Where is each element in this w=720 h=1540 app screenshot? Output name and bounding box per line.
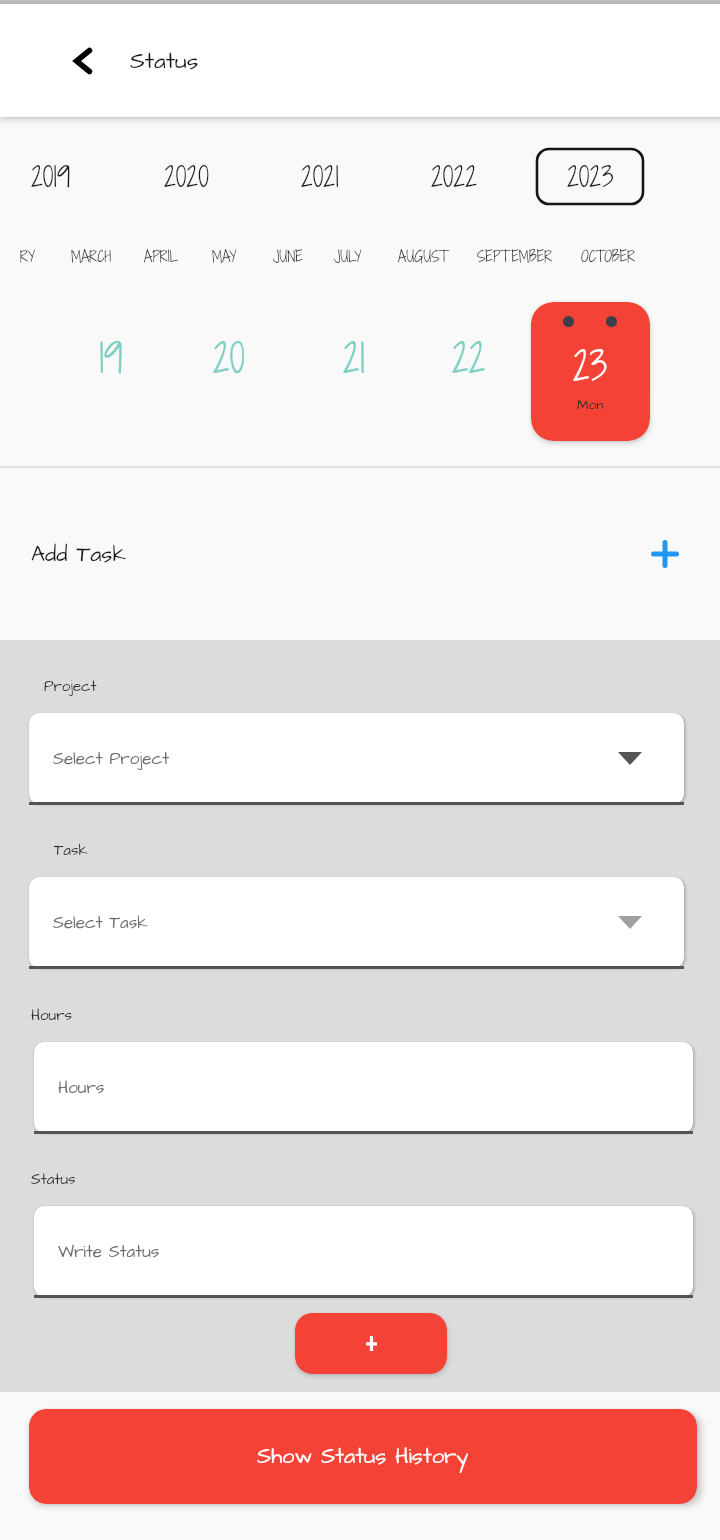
staticText: 2023 — [567, 157, 614, 196]
staticText: MAY — [212, 246, 237, 266]
button[interactable]: MAY — [169, 234, 279, 278]
button[interactable]: 19 — [66, 324, 156, 392]
button[interactable]: 2022 — [401, 149, 507, 204]
button[interactable]: 2023 — [537, 149, 643, 204]
button[interactable]: APRIL — [106, 234, 216, 278]
button[interactable]: Write Status — [34, 1206, 693, 1297]
staticText: Show Status History — [257, 1441, 469, 1472]
button[interactable]: 2021 — [267, 149, 373, 204]
staticText: 21 — [343, 331, 365, 386]
button[interactable]: 20 — [184, 324, 274, 392]
button[interactable]: AUGUST — [368, 234, 478, 278]
staticText: Status — [31, 1169, 76, 1190]
button[interactable]: 22 — [424, 324, 514, 392]
staticText: Write Status — [58, 1240, 160, 1264]
staticText: Status — [130, 45, 199, 77]
staticText: 19 — [99, 331, 123, 386]
staticText: Select Project — [53, 747, 170, 771]
staticText: Hours — [58, 1076, 105, 1100]
staticText: OCTOBER — [581, 246, 636, 266]
button[interactable]: MARCH — [36, 234, 146, 278]
staticText: SEPTEMBER — [477, 246, 552, 266]
staticText: RY — [20, 246, 36, 266]
staticText: Hours — [31, 1005, 72, 1026]
button[interactable]: 2020 — [133, 149, 239, 204]
staticText: 2022 — [431, 157, 477, 196]
staticText: 2021 — [301, 157, 339, 196]
button[interactable]: 2019 — [0, 149, 104, 204]
staticText: 20 — [213, 331, 245, 386]
staticText: APRIL — [144, 246, 179, 266]
staticText: JULY — [334, 246, 362, 266]
staticText: Select Task — [53, 911, 148, 935]
button[interactable]: RY — [0, 234, 83, 278]
button[interactable]: Show Status History — [29, 1409, 697, 1504]
staticText: Task — [54, 840, 88, 861]
staticText: 23 — [573, 339, 608, 394]
button[interactable]: Select Task — [29, 877, 684, 968]
button[interactable]: Add task — [638, 527, 692, 581]
staticText: AUGUST — [398, 246, 449, 266]
button[interactable]: JULY — [293, 234, 403, 278]
button[interactable]: 23 — [531, 302, 650, 441]
staticText: Mon — [577, 395, 604, 414]
staticText: 2019 — [31, 157, 71, 196]
staticText: 22 — [452, 331, 486, 386]
button[interactable]: Select Project — [29, 713, 684, 804]
staticText: JUNE — [273, 246, 303, 266]
button[interactable]: Add Task — [0, 468, 720, 640]
button[interactable]: SEPTEMBER — [459, 234, 569, 278]
button[interactable]: Hours — [34, 1042, 693, 1133]
staticText: 2020 — [164, 157, 209, 196]
staticText: MARCH — [71, 246, 111, 266]
button[interactable]: JUNE — [233, 234, 343, 278]
button[interactable]: Back — [62, 40, 104, 82]
button[interactable]: 21 — [309, 324, 399, 392]
button[interactable]: Add entry — [295, 1313, 447, 1374]
staticText: Add Task — [31, 539, 126, 570]
staticText: Project — [44, 676, 97, 697]
button[interactable]: OCTOBER — [553, 234, 663, 278]
